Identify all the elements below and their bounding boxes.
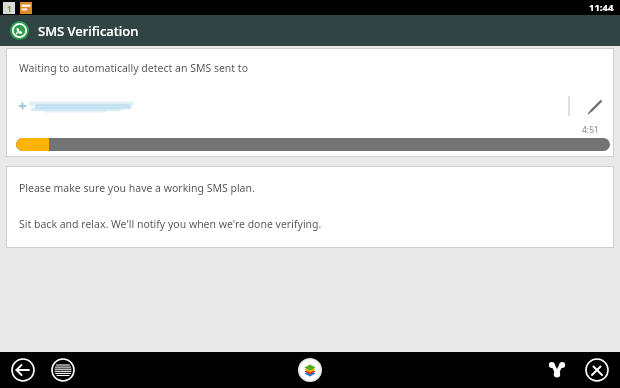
button[interactable]: Edit phone number (565, 91, 613, 121)
staticText: 11:44 (589, 1, 614, 14)
staticText: 1 (7, 3, 12, 14)
staticText: SMS Verification (38, 22, 139, 40)
staticText: Please make sure you have a working SMS … (19, 181, 255, 195)
staticText: Sit back and relax. We'll notify you whe… (19, 217, 322, 231)
button[interactable]: Tools (582, 355, 612, 385)
button[interactable]: Share (542, 355, 572, 385)
staticText: Waiting to automatically detect an SMS s… (19, 61, 249, 75)
staticText: 4:51 (582, 124, 599, 136)
button[interactable]: SMS Verification (0, 15, 620, 46)
button[interactable]: Menu (48, 355, 78, 385)
button[interactable]: Home (297, 357, 323, 383)
button[interactable]: Back (8, 355, 38, 385)
